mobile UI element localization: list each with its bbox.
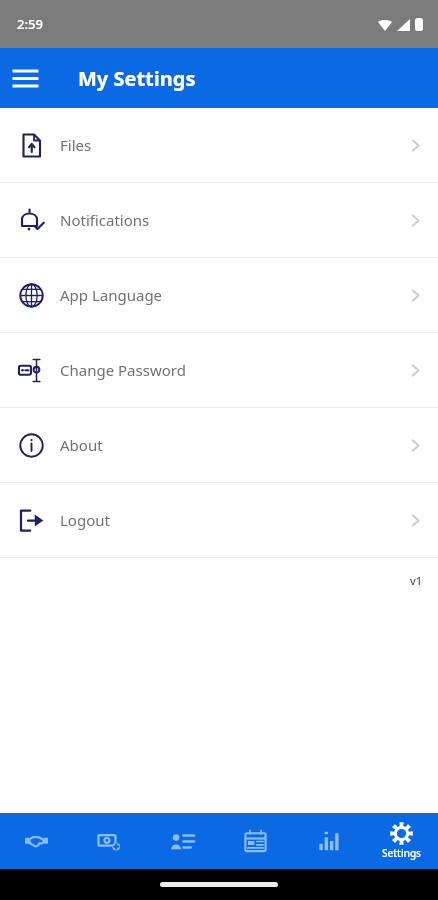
staticText: App Language [60,285,163,305]
staticText: v1 [410,573,423,588]
button[interactable]: Settings [365,813,438,869]
staticText: Change Password [60,360,186,380]
button[interactable]: About [0,408,438,482]
staticText: Notifications [60,210,150,230]
button[interactable]: Open navigation menu [2,55,48,101]
button[interactable]: Change Password [0,333,438,407]
button[interactable]: Notifications [0,183,438,257]
button[interactable]: Files [0,108,438,182]
button[interactable]: App Language [0,258,438,332]
staticText: My Settings [78,65,196,92]
staticText: 2:59 [17,15,43,33]
staticText: Settings [382,846,421,860]
button[interactable]: Schedule [219,813,292,869]
button[interactable]: Reports [292,813,365,869]
staticText: About [60,435,103,455]
button[interactable]: Deals [0,813,73,869]
button[interactable]: Logout [0,483,438,557]
staticText: Logout [60,510,110,530]
staticText: Files [60,135,92,155]
button[interactable]: Contacts [146,813,219,869]
button[interactable]: Add payment [73,813,146,869]
